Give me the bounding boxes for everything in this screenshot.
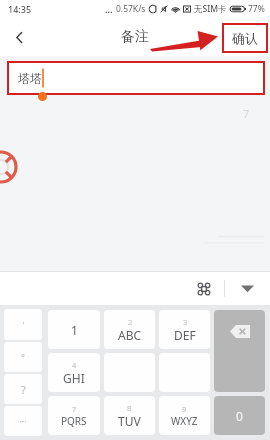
button[interactable]: 确认 xyxy=(222,23,268,53)
staticText: ' xyxy=(22,319,25,331)
button[interactable]: 塔塔 xyxy=(9,63,263,93)
staticText: ? xyxy=(21,382,26,397)
staticText: TUV xyxy=(118,413,141,429)
staticText: 1 xyxy=(71,322,78,338)
staticText: 无SIM卡 xyxy=(194,3,227,15)
staticText: 3 xyxy=(183,317,188,327)
button[interactable]: ° xyxy=(4,342,42,372)
button[interactable]: 0 xyxy=(214,396,265,435)
button[interactable]: 输入法设置 xyxy=(184,272,224,305)
button[interactable]: 2 xyxy=(104,310,155,349)
button[interactable]: 3 xyxy=(159,310,210,349)
staticText: ° xyxy=(21,351,25,363)
button[interactable]: 1 xyxy=(48,310,100,349)
staticText: DEF xyxy=(174,327,196,343)
staticText: 确认 xyxy=(232,30,258,46)
button[interactable]: ? xyxy=(4,374,42,404)
staticText: 7 xyxy=(243,106,250,121)
staticText: 7 xyxy=(72,404,77,414)
staticText: PQRS xyxy=(61,414,87,428)
button[interactable]: ··· xyxy=(4,406,42,436)
button[interactable]: 4 xyxy=(48,353,100,392)
staticText: ··· xyxy=(19,415,27,427)
staticText: 备注 xyxy=(121,28,149,46)
staticText: 77% xyxy=(248,3,265,15)
staticText: 塔塔 xyxy=(18,71,42,86)
staticText: 4 xyxy=(72,360,77,370)
button[interactable]: 9 xyxy=(159,396,210,435)
staticText: ABC xyxy=(118,327,142,343)
staticText: 14:35 xyxy=(8,3,32,15)
staticText: ... xyxy=(105,3,113,15)
button[interactable]: 收起键盘 xyxy=(225,272,270,305)
button[interactable]: 删除 xyxy=(214,310,265,392)
button[interactable]: 8 xyxy=(104,396,155,435)
staticText: 0.57K/s xyxy=(116,3,146,15)
button[interactable]: 返回 xyxy=(0,18,38,56)
staticText: GHI xyxy=(63,370,85,386)
staticText: WXYZ xyxy=(171,414,198,428)
button[interactable]: 7 xyxy=(48,396,100,435)
staticText: 9 xyxy=(182,404,187,414)
staticText: 0 xyxy=(236,408,243,424)
staticText: 8 xyxy=(127,403,132,413)
staticText: 2 xyxy=(128,317,133,327)
